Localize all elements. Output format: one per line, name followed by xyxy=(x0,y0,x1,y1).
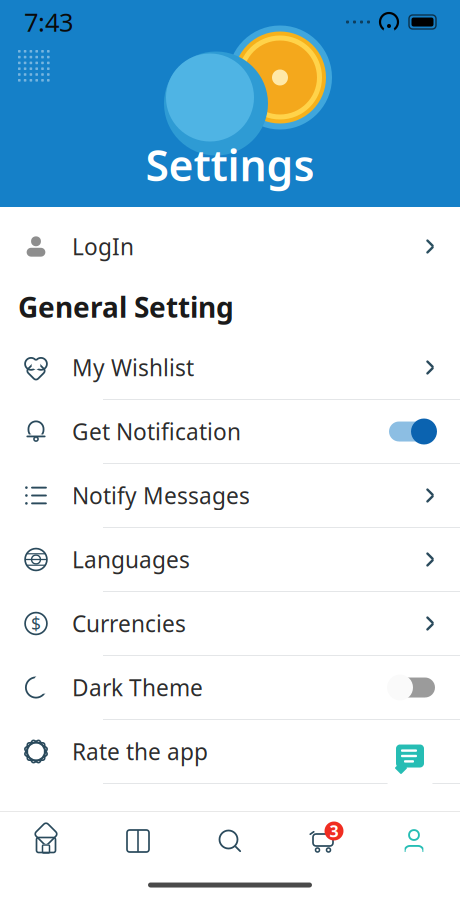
staticText: $ xyxy=(31,612,41,635)
staticText: Currencies xyxy=(72,608,186,638)
button[interactable]: Home xyxy=(0,815,92,867)
staticText: General Setting xyxy=(18,288,234,326)
button[interactable]: Dark Theme xyxy=(0,656,460,720)
button[interactable]: $ xyxy=(0,592,460,656)
staticText: Languages xyxy=(72,544,190,574)
staticText: 3 xyxy=(329,820,338,842)
staticText: Get Notification xyxy=(72,416,241,446)
staticText: My Wishlist xyxy=(72,352,194,382)
button[interactable]: Rate the app xyxy=(0,720,460,784)
staticText: Dark Theme xyxy=(72,672,203,702)
staticText: 7:43 xyxy=(24,5,73,39)
button[interactable]: Notify Messages xyxy=(0,464,460,528)
staticText: Notify Messages xyxy=(72,480,250,510)
staticText: LogIn xyxy=(72,231,134,261)
button[interactable]: LogIn xyxy=(0,215,460,278)
staticText: Settings xyxy=(145,136,314,193)
button[interactable]: Get Notification xyxy=(0,400,460,464)
button[interactable]: Languages xyxy=(0,528,460,592)
button[interactable]: Cart, 3 items xyxy=(276,815,368,867)
button[interactable]: My Wishlist xyxy=(0,336,460,400)
button[interactable]: Search xyxy=(184,815,276,867)
button[interactable]: Account xyxy=(368,815,460,867)
button[interactable]: Catalog xyxy=(92,815,184,867)
button[interactable]: Chat support xyxy=(376,724,444,792)
staticText: Rate the app xyxy=(72,736,208,766)
